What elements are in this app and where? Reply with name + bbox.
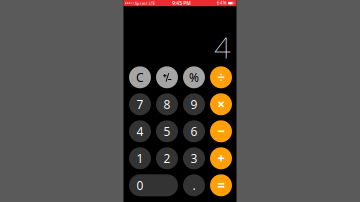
staticText: 2: [163, 150, 170, 166]
staticText: 3: [190, 150, 197, 166]
button[interactable]: Divide: [210, 66, 232, 88]
button[interactable]: 6: [183, 120, 205, 142]
staticText: 1: [136, 150, 143, 166]
staticText: 5: [163, 123, 170, 139]
staticText: 8: [163, 96, 170, 112]
staticText: 64%: [217, 0, 227, 6]
button[interactable]: 5: [156, 120, 178, 142]
staticText: 4: [214, 27, 231, 66]
button[interactable]: .: [183, 174, 205, 196]
button[interactable]: Equals: [210, 174, 232, 196]
staticText: LTE: [149, 0, 155, 6]
button[interactable]: 0: [129, 174, 178, 196]
staticText: %: [189, 69, 199, 85]
staticText: 9: [190, 96, 197, 112]
staticText: 7: [136, 96, 143, 112]
button[interactable]: 7: [129, 93, 151, 115]
button[interactable]: 3: [183, 147, 205, 169]
button[interactable]: Plus: [210, 147, 232, 169]
staticText: 6: [190, 123, 197, 139]
staticText: 4: [136, 123, 143, 139]
button[interactable]: Minus: [210, 120, 232, 142]
button[interactable]: %: [183, 66, 205, 88]
staticText: C: [136, 69, 144, 85]
button[interactable]: 8: [156, 93, 178, 115]
staticText: 9:45 PM: [172, 0, 190, 6]
button[interactable]: 9: [183, 93, 205, 115]
button[interactable]: C: [129, 66, 151, 88]
button[interactable]: 4: [129, 120, 151, 142]
button[interactable]: Multiply: [210, 93, 232, 115]
staticText: Sprint: [135, 0, 148, 6]
staticText: 0: [136, 177, 143, 193]
button[interactable]: 2: [156, 147, 178, 169]
button[interactable]: Plus minus: [156, 66, 178, 88]
staticText: .: [192, 177, 195, 193]
button[interactable]: 1: [129, 147, 151, 169]
